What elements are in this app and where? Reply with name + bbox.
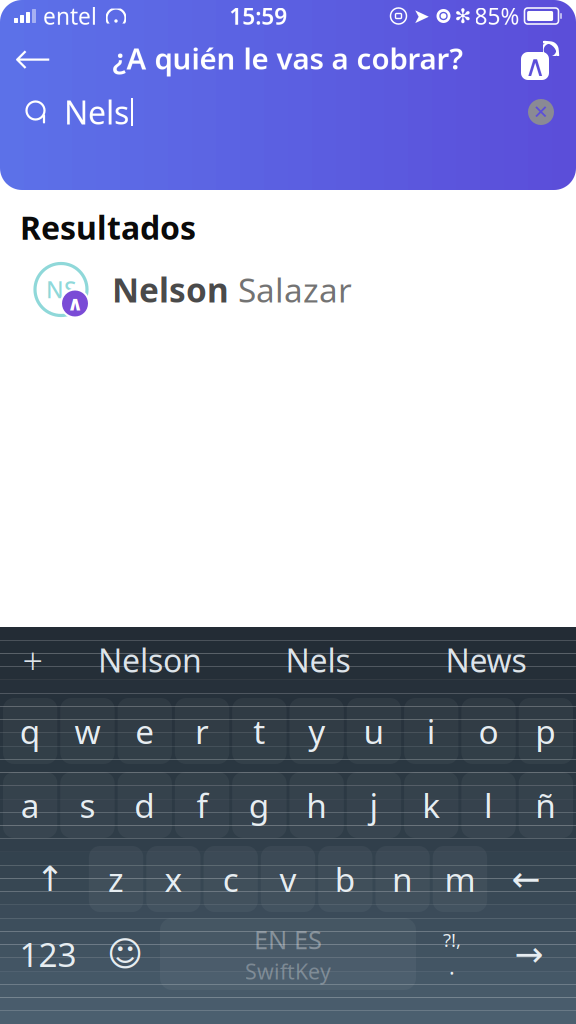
staticText: ∧ (524, 49, 545, 83)
staticText: z (108, 857, 124, 901)
button[interactable]: 123 (6, 917, 90, 991)
button[interactable]: z (89, 846, 143, 912)
staticText: w (74, 709, 100, 753)
staticText: b (335, 857, 356, 901)
staticText: r (195, 709, 209, 753)
button[interactable]: s (60, 772, 115, 838)
button[interactable]: j (347, 772, 401, 838)
staticText: s (79, 783, 95, 827)
button[interactable]: m (433, 846, 487, 912)
button[interactable]: h (289, 772, 344, 838)
button[interactable]: y (289, 698, 344, 764)
staticText: l (484, 783, 493, 827)
staticText: Nelson (98, 639, 202, 681)
staticText: Resultados (20, 206, 196, 248)
button[interactable]: t (232, 698, 286, 764)
staticText: ñ (535, 783, 556, 827)
staticText: ☺ (107, 934, 143, 974)
button[interactable]: a (3, 772, 57, 838)
staticText: i (427, 709, 436, 753)
staticText: Nels (285, 639, 350, 681)
staticText: q (20, 709, 41, 753)
button[interactable]: News (402, 627, 570, 693)
staticText: p (535, 709, 556, 753)
staticText: v (279, 857, 296, 901)
button[interactable]: NS (0, 256, 576, 322)
staticText: NS (46, 274, 76, 304)
staticText: a (21, 783, 40, 827)
staticText: ¿A quién le vas a cobrar? (112, 38, 463, 77)
button[interactable]: Back (6, 33, 60, 83)
staticText: e (135, 709, 154, 753)
button[interactable]: Clear search (518, 89, 564, 135)
staticText: ← (512, 859, 541, 899)
button[interactable]: x (146, 846, 200, 912)
staticText: Nelson (112, 267, 229, 312)
button[interactable]: e (118, 698, 172, 764)
staticText: . (449, 952, 455, 980)
button[interactable]: Space (160, 918, 416, 990)
staticText: 123 (19, 932, 76, 976)
staticText: k (422, 783, 440, 827)
button[interactable]: Emoji (90, 917, 160, 991)
staticText: entel (43, 1, 97, 31)
staticText: x (164, 857, 182, 901)
button[interactable]: Return (488, 917, 570, 991)
staticText: EN ES (254, 922, 322, 956)
button[interactable]: g (232, 772, 286, 838)
staticText: ∧ (67, 292, 83, 315)
staticText: Nels (64, 91, 129, 133)
button[interactable]: c (204, 846, 258, 912)
button[interactable]: App (516, 33, 570, 83)
button[interactable]: w (60, 698, 115, 764)
staticText: News (445, 639, 526, 681)
button[interactable]: q (3, 698, 57, 764)
button[interactable]: r (175, 698, 229, 764)
button[interactable]: Nelson (66, 627, 234, 693)
staticText: ↑ (35, 859, 64, 899)
staticText: m (444, 857, 475, 901)
staticText: ➤ (413, 5, 430, 27)
staticText: 15:59 (229, 1, 287, 31)
staticText: ✻ (454, 5, 471, 27)
staticText: ← (14, 32, 52, 84)
staticText: Salazar (229, 267, 352, 312)
button[interactable]: v (261, 846, 315, 912)
staticText: n (392, 857, 413, 901)
button[interactable]: u (347, 698, 401, 764)
button[interactable]: Add word (0, 627, 66, 693)
staticText: u (363, 709, 384, 753)
button[interactable]: ñ (519, 772, 573, 838)
staticText: 85% (474, 1, 519, 31)
staticText: d (134, 783, 155, 827)
staticText: + (22, 636, 43, 684)
staticText: f (196, 783, 207, 827)
button[interactable]: n (375, 846, 430, 912)
staticText: SwiftKey (245, 957, 331, 985)
button[interactable]: ← (490, 846, 562, 912)
button[interactable]: b (318, 846, 372, 912)
button[interactable]: d (118, 772, 172, 838)
button[interactable]: l (461, 772, 516, 838)
staticText: g (249, 783, 270, 827)
staticText: c (223, 857, 239, 901)
button[interactable]: k (404, 772, 458, 838)
staticText: ?!, (443, 927, 461, 952)
staticText: t (253, 709, 265, 753)
staticText: y (308, 709, 325, 753)
button[interactable]: p (519, 698, 573, 764)
button[interactable]: Nels (234, 627, 402, 693)
button[interactable]: ↑ (14, 846, 86, 912)
staticText: j (369, 783, 378, 827)
button[interactable]: i (404, 698, 458, 764)
button[interactable]: f (175, 772, 229, 838)
staticText: → (514, 934, 543, 974)
button[interactable]: Punctuation (416, 917, 488, 991)
button[interactable]: o (461, 698, 516, 764)
staticText: h (306, 783, 327, 827)
staticText: o (479, 709, 499, 753)
staticText: ✕ (533, 101, 549, 123)
